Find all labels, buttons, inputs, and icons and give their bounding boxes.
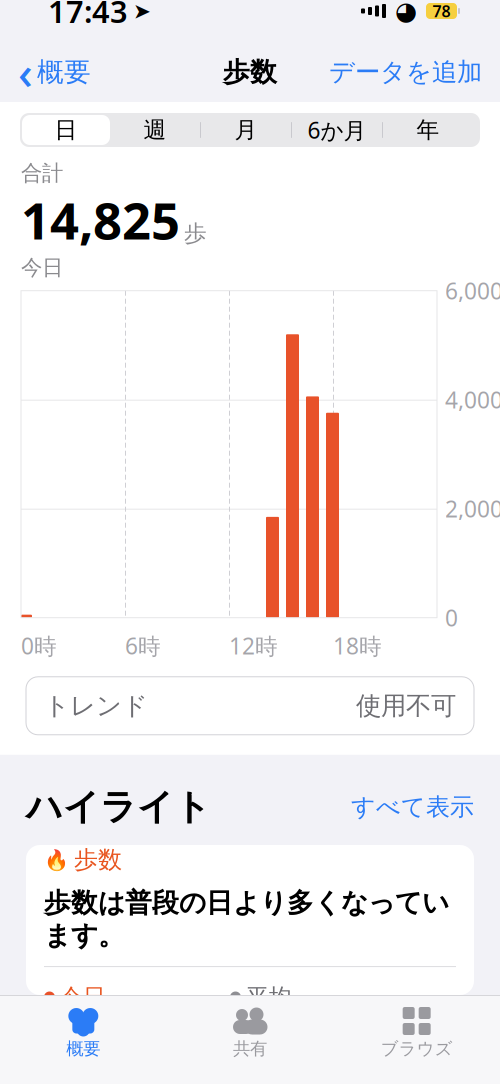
staticText: ◕ <box>395 0 417 25</box>
button[interactable]: 週 <box>110 114 200 146</box>
staticText: 歩数 <box>223 56 277 88</box>
staticText: 0時 <box>21 631 57 661</box>
staticText: 6時 <box>125 631 161 661</box>
button[interactable]: 年 <box>383 114 473 146</box>
staticText: 78 <box>432 0 450 22</box>
staticText: 月 <box>234 116 257 144</box>
staticText: 歩 <box>184 220 207 247</box>
button[interactable]: 月 <box>201 114 291 146</box>
staticText: データを追加 <box>329 56 482 87</box>
staticText: 概要 <box>66 1038 100 1059</box>
staticText: ‹ <box>18 42 33 102</box>
staticText: トレンド <box>44 690 148 721</box>
staticText: ➤ <box>133 0 151 23</box>
staticText: ブラウズ <box>381 1038 453 1059</box>
staticText: 6か月 <box>307 115 366 145</box>
staticText: 概要 <box>37 56 91 88</box>
button[interactable]: 日 <box>22 115 110 145</box>
staticText: 0 <box>445 603 458 633</box>
staticText: ハイライト <box>26 785 211 829</box>
staticText: 今日 <box>21 254 63 281</box>
staticText: 🔥 <box>44 848 69 871</box>
staticText: すべて表示 <box>351 792 474 822</box>
staticText: 14,825 <box>21 186 180 253</box>
staticText: 歩数は普段の日より多くなっています。 <box>44 887 449 952</box>
staticText: 歩数 <box>74 845 122 875</box>
button[interactable]: トレンド <box>26 677 474 735</box>
staticText: 平均 <box>246 983 292 1011</box>
staticText: 週 <box>143 116 166 144</box>
button[interactable]: 概要 <box>0 1004 167 1062</box>
staticText: 今日 <box>60 983 106 1011</box>
staticText: 2,000 <box>445 494 500 524</box>
button[interactable]: 6か月 <box>292 114 382 146</box>
staticText: 17:43 <box>48 0 128 31</box>
button[interactable]: データを追加 <box>317 50 494 93</box>
staticText: 使用不可 <box>356 690 456 721</box>
button[interactable]: ブラウズ <box>333 1004 500 1062</box>
staticText: 合計 <box>21 160 63 186</box>
staticText: 年 <box>416 116 439 144</box>
staticText: 12時 <box>229 631 278 661</box>
button[interactable]: 共有 <box>167 1004 333 1062</box>
button[interactable]: 🔥 <box>26 845 474 995</box>
staticText: 6,000 <box>445 276 500 306</box>
button[interactable]: ‹ <box>6 36 103 108</box>
staticText: 18時 <box>333 631 382 661</box>
staticText: 日 <box>54 116 77 144</box>
button[interactable]: すべて表示 <box>351 792 474 822</box>
staticText: 共有 <box>233 1038 267 1059</box>
staticText: 4,000 <box>445 385 500 415</box>
